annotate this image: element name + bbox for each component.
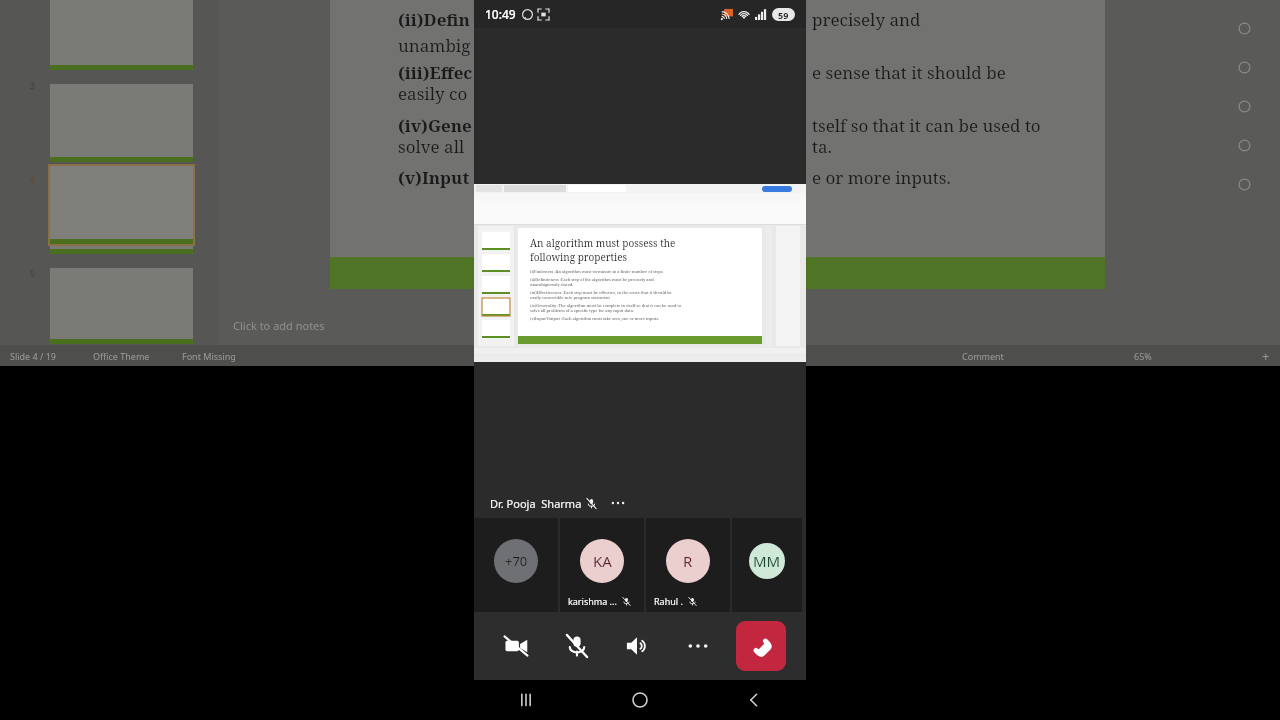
staticText: R bbox=[683, 551, 693, 571]
button[interactable]: An algorithm must possess the bbox=[474, 184, 806, 362]
button[interactable]: KA bbox=[560, 518, 644, 612]
staticText: 65% bbox=[1134, 350, 1152, 362]
staticText: solve all bbox=[398, 135, 465, 158]
staticText: MM bbox=[753, 551, 781, 571]
button[interactable]: More options bbox=[607, 492, 629, 514]
staticText: unambig bbox=[398, 34, 471, 57]
staticText: Dr. Pooja Sharma bbox=[490, 496, 582, 511]
staticText: Office Theme bbox=[93, 350, 150, 362]
staticText: Click to add notes bbox=[233, 318, 325, 333]
staticText: karishma ... bbox=[568, 595, 617, 607]
button[interactable]: End call bbox=[736, 621, 786, 671]
button[interactable]: More options bbox=[676, 624, 720, 668]
button[interactable]: Recents bbox=[508, 682, 544, 718]
button[interactable]: MM bbox=[732, 518, 802, 612]
staticText: (iii)Effectiveness :Each step must be ef… bbox=[530, 290, 672, 300]
staticText: tself so that it can be used to bbox=[812, 114, 1041, 137]
staticText: (ii)Definiteness :Each step of the algor… bbox=[530, 277, 654, 287]
staticText: 59 bbox=[778, 9, 789, 21]
staticText: Font Missing bbox=[182, 350, 236, 362]
staticText: (iv)Generality :The algorithm must be co… bbox=[530, 303, 682, 313]
staticText: + bbox=[1262, 347, 1270, 365]
button[interactable]: +70 bbox=[474, 518, 558, 612]
button[interactable]: Unmute bbox=[555, 624, 599, 668]
staticText: 10:49 bbox=[485, 6, 516, 22]
staticText: (i)Finiteness :An algorithm must termina… bbox=[530, 269, 664, 274]
button[interactable]: Back bbox=[736, 682, 772, 718]
staticText: ta. bbox=[812, 135, 832, 158]
button[interactable]: Dr. Pooja Sharma bbox=[474, 488, 806, 518]
button[interactable]: Speaker bbox=[615, 624, 659, 668]
staticText: (iii)Effec bbox=[398, 61, 473, 84]
staticText: precisely and bbox=[812, 8, 921, 31]
staticText: KA bbox=[593, 551, 612, 571]
button[interactable]: R bbox=[646, 518, 730, 612]
staticText: 5 bbox=[30, 268, 35, 279]
staticText: e or more inputs. bbox=[812, 166, 951, 189]
staticText: Comment bbox=[962, 350, 1004, 362]
staticText: following properties bbox=[530, 250, 628, 264]
staticText: +70 bbox=[505, 552, 528, 570]
other: Muted bbox=[586, 498, 597, 509]
staticText: (v)Input/Output :Each algorithm must tak… bbox=[530, 316, 659, 321]
staticText: An algorithm must possess the bbox=[530, 236, 676, 250]
staticText: easily co bbox=[398, 82, 468, 105]
staticText: Rahul . bbox=[654, 595, 683, 607]
staticText: (v)Input bbox=[398, 166, 470, 189]
staticText: (ii)Defin bbox=[398, 8, 470, 31]
staticText: 4 bbox=[30, 174, 35, 185]
staticText: 3 bbox=[30, 80, 35, 91]
button[interactable]: Home bbox=[622, 682, 658, 718]
staticText: (iv)Gene bbox=[398, 114, 472, 137]
button[interactable]: Turn camera on bbox=[494, 624, 538, 668]
staticText: e sense that it should be bbox=[812, 61, 1006, 84]
staticText: Slide 4 / 19 bbox=[10, 350, 57, 362]
